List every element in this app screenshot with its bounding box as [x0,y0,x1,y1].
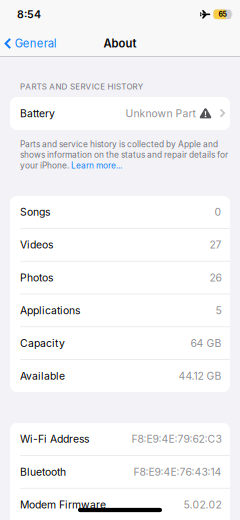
staticText: 44.12 GB [178,370,221,382]
staticText: General [15,37,57,50]
staticText: 5.02.02 [183,498,221,511]
staticText: Bluetooth [20,466,66,478]
staticText: 26 [209,271,221,284]
staticText: 8:54 [17,8,41,21]
staticText: Learn more... [71,160,122,170]
staticText: 5 [215,304,221,317]
staticText: F8:E9:4E:79:62:C3 [131,433,221,445]
staticText: Wi-Fi Address [20,433,89,445]
staticText: Parts and service history is collected b… [20,139,218,149]
staticText: Battery [20,107,55,120]
staticText: About [103,37,136,50]
staticText: Songs [20,206,50,218]
staticText: Applications [20,304,80,317]
button[interactable]: Battery [10,97,230,130]
staticText: 65 [218,10,226,18]
staticText: Modem Firmware [20,498,106,511]
staticText: F8:E9:4E:76:43:14 [133,466,221,478]
staticText: Videos [20,239,53,251]
staticText: PARTS AND SERVICE HISTORY [20,82,143,91]
staticText: 64 GB [190,337,221,349]
button[interactable]: Learn more... [71,160,122,170]
staticText: Photos [20,271,53,284]
staticText: 0 [214,206,221,218]
staticText: 27 [209,239,221,251]
staticText: Unknown Part [125,107,195,120]
button[interactable]: General [4,30,63,57]
staticText: Capacity [20,337,65,349]
staticText: shows information on the status and repa… [20,150,228,160]
staticText: your iPhone. [20,160,71,170]
staticText: Available [20,370,65,382]
